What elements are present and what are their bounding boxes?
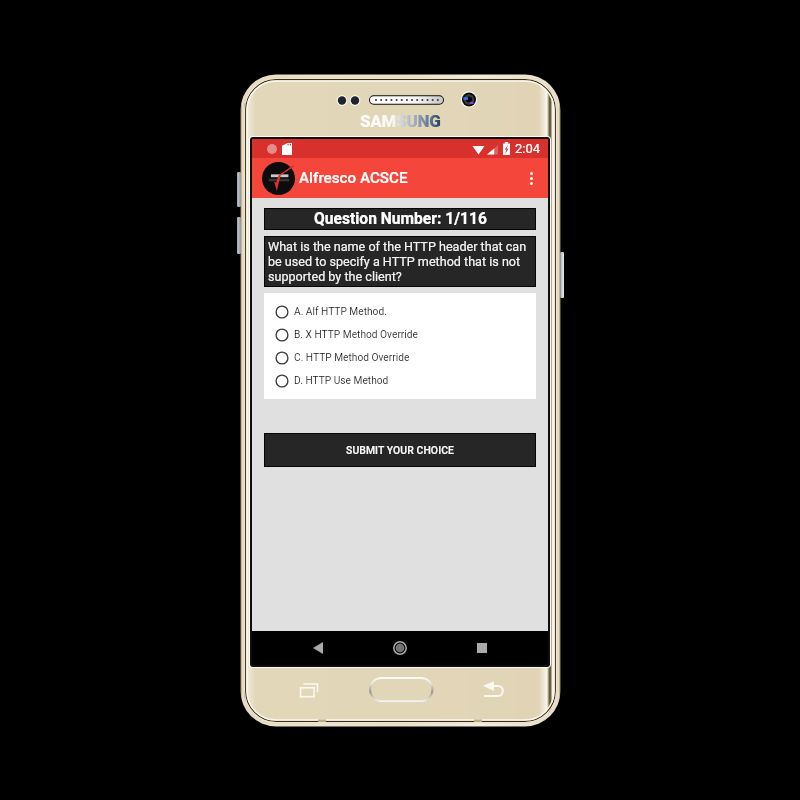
- staticText: A. Alf HTTP Method.: [294, 306, 387, 318]
- button[interactable]: SUBMIT YOUR CHOICE: [264, 433, 536, 467]
- staticText: Question Number: 1/116: [314, 210, 487, 228]
- button[interactable]: Back: [303, 633, 333, 663]
- staticText: C. HTTP Method Override: [294, 352, 410, 364]
- button[interactable]: More options: [516, 163, 546, 193]
- button[interactable]: Home: [385, 633, 415, 663]
- staticText: What is the name of the HTTP header that…: [268, 239, 532, 284]
- button[interactable]: Recents: [467, 633, 497, 663]
- staticText: Alfresco ACSCE: [299, 169, 408, 187]
- staticText: 2:04: [515, 141, 541, 156]
- button[interactable]: C. HTTP Method Override: [264, 346, 536, 369]
- button[interactable]: D. HTTP Use Method: [264, 369, 536, 392]
- button[interactable]: B. X HTTP Method Override: [264, 323, 536, 346]
- staticText: D. HTTP Use Method: [294, 375, 389, 387]
- staticText: SUBMIT YOUR CHOICE: [346, 444, 455, 456]
- staticText: B. X HTTP Method Override: [294, 329, 418, 341]
- button[interactable]: A. Alf HTTP Method.: [264, 300, 536, 323]
- staticText: SAMSUNG: [360, 111, 441, 129]
